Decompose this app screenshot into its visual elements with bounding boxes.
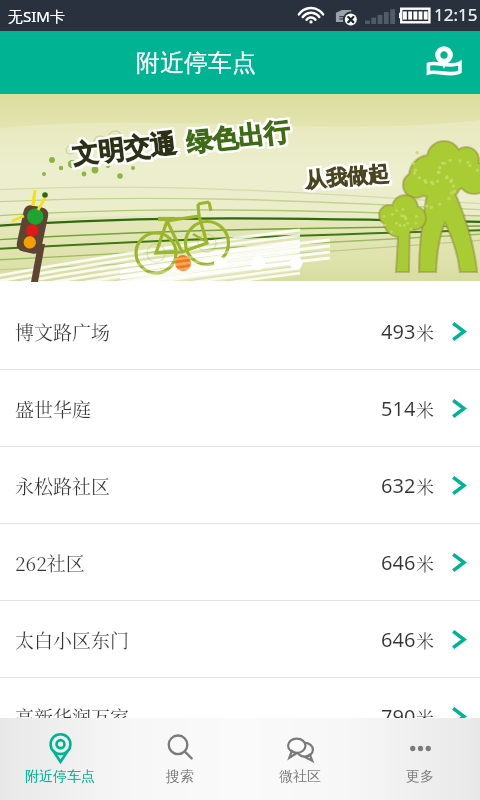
staticText: 博文路广场 (15, 318, 111, 345)
staticText: 646 (381, 549, 416, 576)
staticText: 附近停车点 (136, 48, 256, 78)
staticText: 米 (416, 704, 434, 730)
staticText: 绿色出行 (186, 113, 293, 158)
staticText: 从我做起 (306, 158, 392, 191)
staticText: 790 (381, 703, 416, 730)
staticText: 搜索 (166, 768, 194, 786)
staticText: 绿色出行 (182, 115, 290, 160)
staticText: 514 (381, 395, 416, 422)
staticText: 永松路社区 (15, 472, 111, 499)
staticText: 文明交通 (69, 129, 176, 174)
staticText: 493 (381, 318, 416, 345)
staticText: 米 (416, 319, 434, 345)
button[interactable]: 地图 (420, 39, 468, 87)
staticText: 12:15 (434, 3, 478, 26)
staticText: 绿色出行 (183, 117, 290, 162)
staticText: 绿色出行 (184, 113, 291, 158)
staticText: 高新华润万家 (15, 703, 130, 730)
staticText: 从我做起 (306, 160, 392, 193)
staticText: 文明交通 (73, 129, 180, 174)
staticText: 无SIM卡 (8, 6, 65, 26)
staticText: 绿色出行 (184, 115, 292, 160)
staticText: 从我做起 (302, 163, 388, 196)
staticText: 文明交通 (70, 125, 177, 170)
button[interactable]: 搜索 (120, 718, 240, 800)
staticText: 绿色出行 (185, 117, 292, 162)
staticText: 文明交通 (72, 127, 180, 172)
button[interactable]: 更多 (360, 718, 480, 800)
staticText: 附近停车点 (25, 768, 95, 786)
staticText: 文明交通 (71, 129, 178, 174)
staticText: 米 (416, 473, 434, 499)
staticText: 米 (416, 627, 434, 653)
staticText: 632 (381, 472, 416, 499)
staticText: 文明交通 (68, 125, 175, 170)
staticText: 从我做起 (304, 162, 390, 196)
staticText: 文明交通 (70, 127, 178, 172)
staticText: 262社区 (15, 549, 85, 576)
button[interactable]: 262社区 (0, 524, 480, 600)
staticText: 从我做起 (302, 161, 388, 194)
staticText: 微社区 (279, 768, 321, 786)
staticText: 文明交通 (68, 127, 176, 172)
button[interactable]: 盛世华庭 (0, 370, 480, 446)
staticText: 从我做起 (306, 162, 392, 195)
staticText: 从我做起 (304, 158, 390, 192)
staticText: 米 (416, 396, 434, 422)
staticText: 绿色出行 (182, 113, 289, 158)
staticText: 太白小区东门 (15, 626, 130, 653)
button[interactable]: 博文路广场 (0, 293, 480, 369)
staticText: 盛世华庭 (15, 395, 92, 422)
button[interactable]: 高新华润万家 (0, 678, 480, 754)
staticText: 米 (416, 550, 434, 576)
staticText: 646 (381, 626, 416, 653)
button[interactable]: 太白小区东门 (0, 601, 480, 677)
staticText: 绿色出行 (186, 115, 294, 160)
button[interactable]: 微社区 (240, 718, 360, 800)
staticText: 更多 (406, 768, 434, 786)
button[interactable]: 永松路社区 (0, 447, 480, 523)
staticText: 文明交通 (72, 125, 179, 170)
button[interactable]: 附近停车点 (0, 718, 120, 800)
staticText: 从我做起 (302, 159, 388, 192)
staticText: 从我做起 (304, 160, 390, 194)
staticText: 绿色出行 (187, 117, 294, 162)
